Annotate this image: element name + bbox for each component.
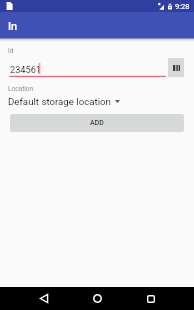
button[interactable]: Back [30,287,58,310]
staticText: Id [8,47,14,55]
button[interactable]: Home [83,287,111,310]
staticText: In [8,20,18,33]
staticText: 9:28 [175,2,190,11]
button[interactable]: Scan barcode [168,58,184,77]
staticText: Location [8,85,34,93]
staticText: 234561 [10,64,41,75]
staticText: Default storage location [8,96,111,107]
button[interactable]: ADD [10,114,184,132]
button[interactable]: Default storage location [8,96,120,107]
staticText: ADD [90,119,104,127]
button[interactable]: Recents [137,287,165,310]
